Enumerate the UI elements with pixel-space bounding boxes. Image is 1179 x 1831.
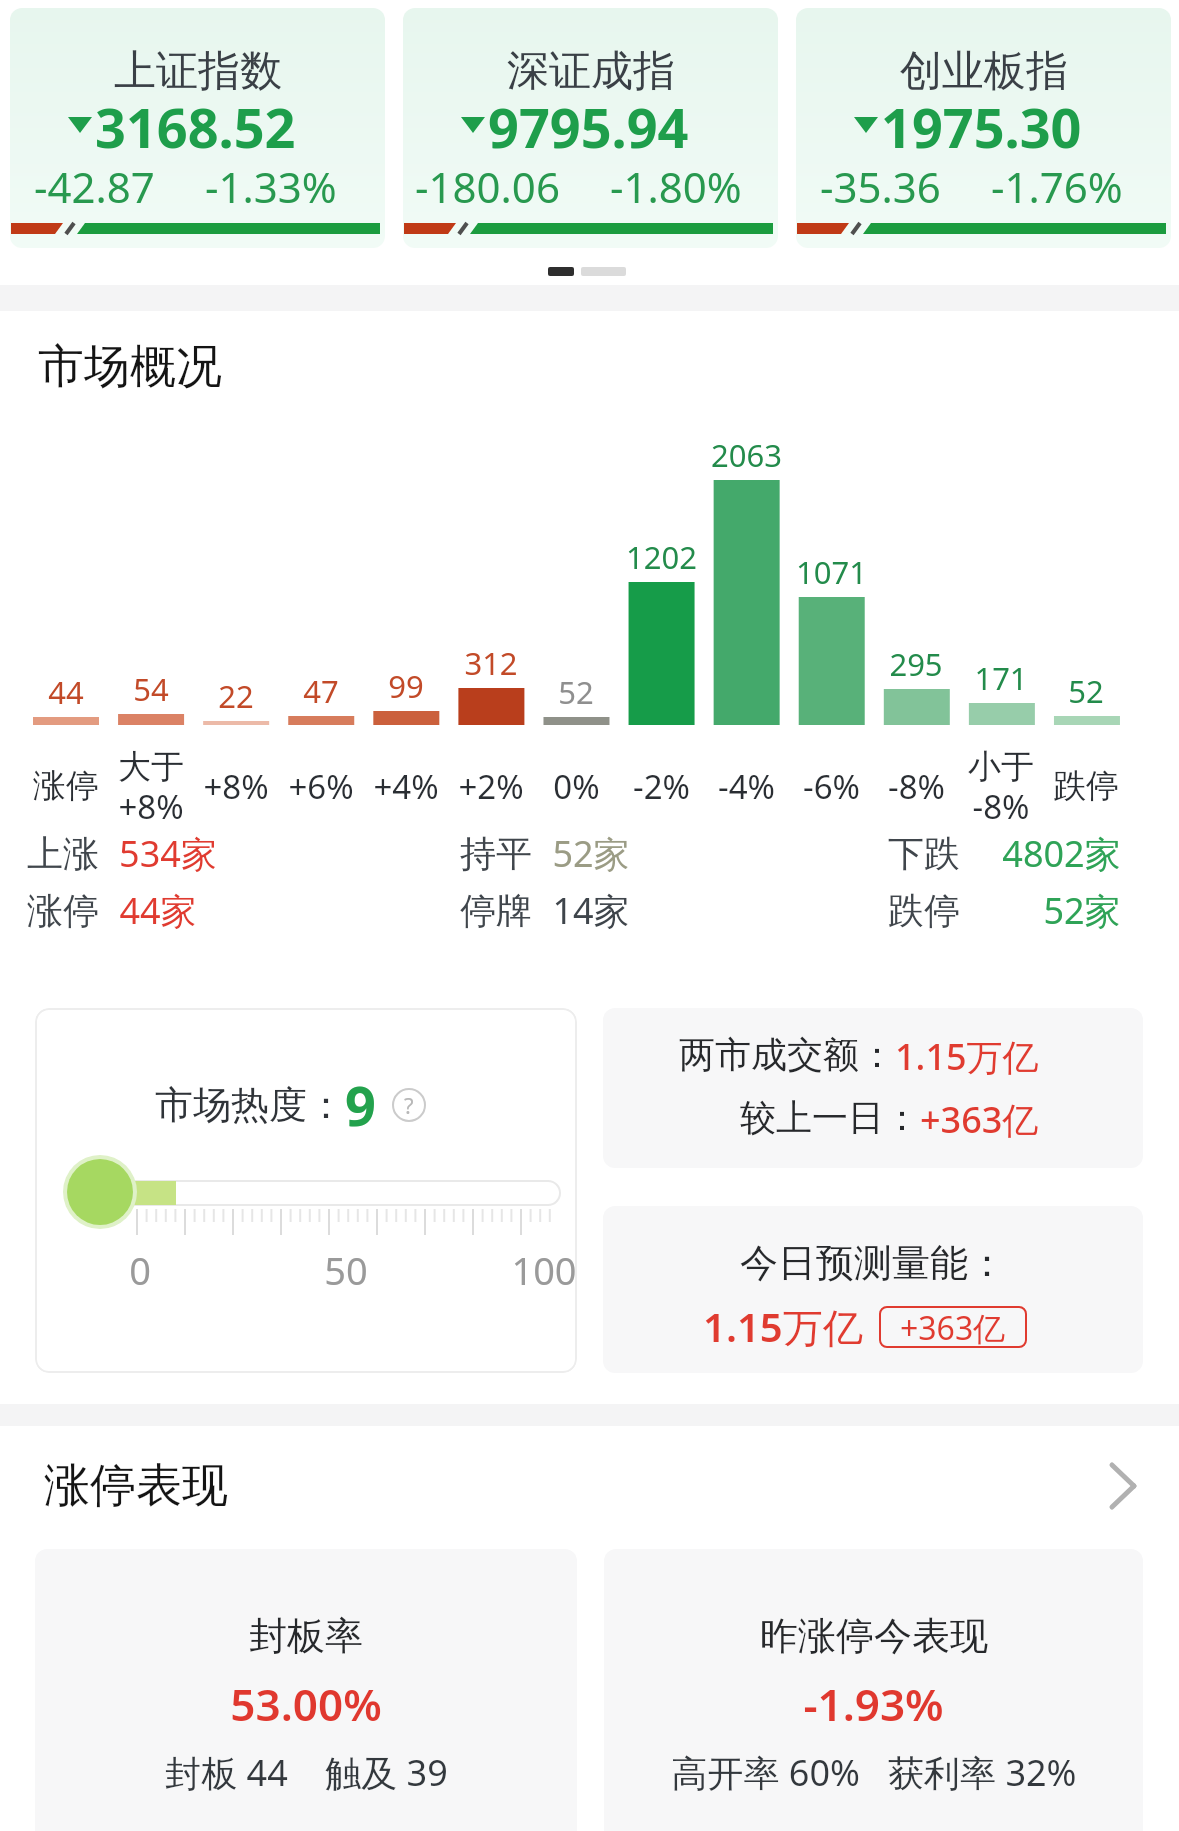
staticText: 53.00% <box>230 1674 382 1734</box>
staticText: 下跌 <box>888 831 960 876</box>
staticText: 昨涨停今表现 <box>760 1612 988 1660</box>
staticText: +2% <box>458 764 524 809</box>
staticText: 52 <box>558 671 594 713</box>
staticText: 持平 <box>460 831 532 876</box>
staticText: 市场概况 <box>38 338 222 392</box>
staticText: +363亿 <box>900 1306 1006 1348</box>
staticText: 100 <box>511 1244 577 1296</box>
staticText: -4% <box>718 764 775 809</box>
staticText: 47 <box>303 670 339 712</box>
staticText: 跌停 <box>888 888 960 933</box>
staticText: 涨停 <box>27 888 99 933</box>
staticText: 1071 <box>796 551 867 593</box>
button[interactable]: 涨停表现 <box>0 1440 1179 1532</box>
staticText: 两市成交额： <box>679 1032 895 1077</box>
staticText: -1.76% <box>991 158 1123 210</box>
staticText: 小于 -8% <box>968 746 1034 829</box>
staticText: 99 <box>388 665 424 707</box>
staticText: -42.87 <box>34 158 155 210</box>
staticText: 0 <box>129 1244 151 1296</box>
staticText: -35.36 <box>820 158 941 210</box>
staticText: 1.15万亿 <box>703 1299 863 1354</box>
staticText: +4% <box>373 764 439 809</box>
staticText: 上证指数 <box>114 45 282 98</box>
staticText: 52家 <box>552 829 630 878</box>
staticText: 3168.52 <box>95 90 296 158</box>
staticText: 0% <box>553 764 600 809</box>
staticText: 22 <box>218 675 254 717</box>
staticText: 市场热度： <box>155 1081 345 1129</box>
button[interactable] <box>35 1549 577 1831</box>
staticText: 大于 +8% <box>118 746 184 829</box>
staticText: 今日预测量能： <box>740 1239 1006 1287</box>
staticText: 534家 <box>119 829 217 878</box>
staticText: 创业板指 <box>900 45 1068 98</box>
staticText: +363亿 <box>920 1095 1039 1144</box>
button[interactable]: 创业板指 <box>796 8 1171 248</box>
staticText: 1202 <box>626 536 697 578</box>
staticText: 跌停 <box>1053 765 1119 807</box>
staticText: 4802家 <box>1002 829 1121 878</box>
staticText: 高开率 60% 获利率 32% <box>671 1748 1077 1797</box>
staticText: 深证成指 <box>507 45 675 98</box>
staticText: 44 <box>48 671 84 713</box>
staticText: 14家 <box>552 886 630 935</box>
staticText: 171 <box>974 657 1028 699</box>
staticText: -6% <box>803 764 860 809</box>
button[interactable]: 深证成指 <box>403 8 778 248</box>
staticText: 1.15万亿 <box>895 1032 1039 1081</box>
staticText: +6% <box>288 764 354 809</box>
staticText: 9795.94 <box>488 90 689 158</box>
staticText: 封板率 <box>249 1612 363 1660</box>
button[interactable] <box>604 1549 1143 1831</box>
staticText: -1.33% <box>205 158 337 210</box>
staticText: 涨停 <box>33 765 99 807</box>
staticText: 较上一日： <box>740 1095 920 1140</box>
staticText: +8% <box>203 764 269 809</box>
staticText: 封板 44 触及 39 <box>165 1748 448 1797</box>
staticText: 52 <box>1068 670 1104 712</box>
staticText: 上涨 <box>27 831 99 876</box>
staticText: 52家 <box>1043 886 1121 935</box>
staticText: -1.93% <box>803 1674 944 1734</box>
staticText: 1975.30 <box>881 90 1082 158</box>
staticText: -1.80% <box>610 158 742 210</box>
staticText: 停牌 <box>460 888 532 933</box>
staticText: 312 <box>464 642 518 684</box>
button[interactable]: 两市成交额： <box>603 1008 1143 1168</box>
button[interactable] <box>35 1008 577 1373</box>
staticText: 50 <box>324 1244 368 1296</box>
staticText: 54 <box>133 668 169 710</box>
staticText: -180.06 <box>415 158 560 210</box>
staticText: ? <box>404 1090 414 1120</box>
button[interactable]: 上证指数 <box>10 8 385 248</box>
staticText: 9 <box>345 1068 376 1142</box>
staticText: 涨停表现 <box>44 1457 228 1515</box>
staticText: 2063 <box>711 434 782 476</box>
staticText: 44家 <box>119 886 197 935</box>
staticText: -2% <box>633 764 690 809</box>
staticText: 295 <box>889 643 943 685</box>
button[interactable]: 今日预测量能： <box>603 1206 1143 1373</box>
staticText: -8% <box>888 764 945 809</box>
